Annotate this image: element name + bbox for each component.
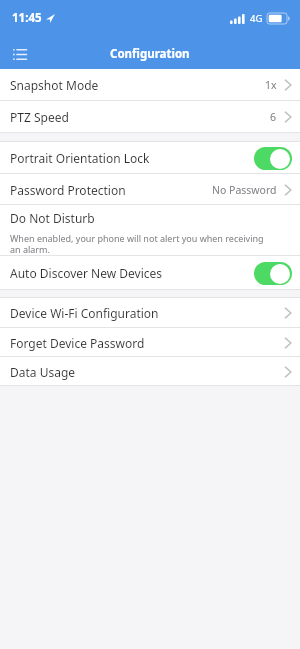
staticText: No Password (212, 183, 277, 197)
button[interactable]: Portrait Orientation Lock (0, 142, 300, 174)
button[interactable] (254, 262, 292, 285)
staticText: Data Usage (10, 364, 76, 380)
button[interactable] (254, 147, 292, 170)
staticText: Portrait Orientation Lock (10, 150, 150, 166)
staticText: Forget Device Password (10, 335, 145, 351)
button[interactable]: Snapshot Mode (0, 69, 300, 101)
staticText: Password Protection (10, 182, 126, 198)
button[interactable]: Auto Discover New Devices (0, 256, 300, 290)
staticText: 1x (265, 78, 277, 92)
button[interactable]: Data Usage (0, 357, 300, 386)
staticText: 4G (250, 12, 263, 25)
staticText: Device Wi-Fi Configuration (10, 305, 159, 321)
staticText: 11:45 (12, 10, 42, 26)
staticText: 6 (270, 110, 277, 124)
staticText: Configuration (110, 46, 190, 62)
button[interactable]: Do Not Disturb (0, 205, 300, 231)
button[interactable]: Password Protection (0, 174, 300, 205)
button[interactable]: Device Wi-Fi Configuration (0, 298, 300, 328)
button[interactable]: Forget Device Password (0, 328, 300, 357)
button[interactable]: PTZ Speed (0, 101, 300, 133)
staticText: Snapshot Mode (10, 77, 99, 93)
staticText: When enabled, your phone will not alert … (10, 232, 264, 256)
button[interactable] (11, 45, 29, 63)
staticText: PTZ Speed (10, 109, 69, 125)
staticText: Auto Discover New Devices (10, 265, 163, 281)
staticText: Do Not Disturb (10, 210, 95, 226)
